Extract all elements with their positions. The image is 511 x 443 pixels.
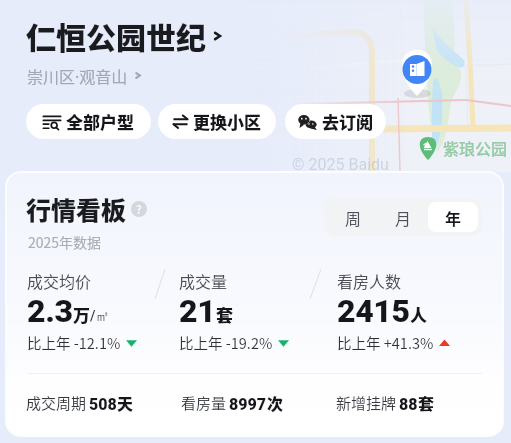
staticText: 套 (418, 391, 435, 414)
staticText: 全部户型 (66, 109, 134, 134)
button[interactable]: 年 (428, 202, 478, 232)
button[interactable]: 月 (378, 202, 428, 232)
staticText: 看房量 (181, 392, 227, 414)
staticText: 崇川区·观音山 (27, 64, 128, 87)
staticText: 成交周期 (26, 392, 87, 414)
staticText: 2415 (337, 292, 410, 330)
staticText: 天 (117, 391, 134, 414)
staticText: 次 (267, 391, 284, 414)
staticText: 比上年 -12.1% (27, 332, 121, 353)
staticText: 更换小区 (193, 109, 261, 134)
staticText: 紫琅公园 (443, 136, 508, 159)
button[interactable]: 更换小区 (158, 104, 276, 139)
staticText: 月 (395, 206, 412, 229)
staticText: 2025年数据 (28, 232, 102, 252)
staticText: 周 (345, 206, 362, 229)
staticText: /㎡ (90, 308, 110, 326)
staticText: 看房人数 (337, 269, 402, 292)
staticText: 成交均价 (27, 269, 92, 292)
button[interactable]: 崇川区·观音山 (27, 64, 144, 87)
button[interactable]: 仁恒公园世纪 (26, 14, 226, 57)
staticText: ? (136, 201, 142, 217)
staticText: 年 (445, 206, 462, 229)
button[interactable]: 全部户型 (26, 104, 151, 139)
staticText: 万 (73, 302, 90, 327)
button[interactable]: 行情看板 (26, 191, 147, 227)
staticText: © 2025 Baidu (292, 155, 389, 174)
staticText: 比上年 -19.2% (179, 332, 273, 353)
staticText: 成交量 (179, 269, 228, 292)
button[interactable]: 说明 (131, 201, 147, 217)
button[interactable]: 看房量 (181, 391, 284, 414)
staticText: 508 (89, 395, 117, 414)
staticText: 比上年 +41.3% (337, 332, 434, 353)
staticText: 88 (399, 395, 418, 414)
staticText: 去订阅 (322, 109, 373, 134)
staticText: 行情看板 (26, 191, 127, 227)
button[interactable]: 新增挂牌 (336, 391, 435, 414)
button[interactable]: 周 (328, 202, 378, 232)
staticText: 2.3 (27, 292, 73, 330)
staticText: 人 (410, 302, 427, 327)
staticText: 21 (179, 292, 216, 330)
staticText: 套 (216, 302, 233, 327)
button[interactable]: 去订阅 (285, 104, 386, 139)
staticText: 仁恒公园世纪 (26, 14, 206, 57)
staticText: 8997 (229, 395, 267, 414)
staticText: 新增挂牌 (336, 392, 397, 414)
button[interactable]: 成交周期 (26, 391, 134, 414)
